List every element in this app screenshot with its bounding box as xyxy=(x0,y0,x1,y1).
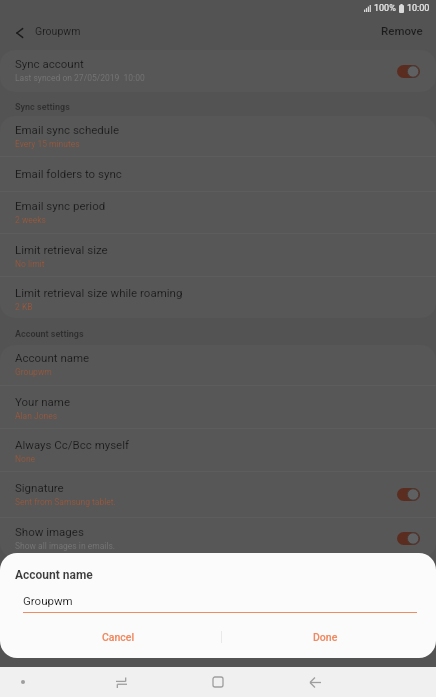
staticText: Alan Jones xyxy=(15,411,58,421)
staticText: Show all images in emails. xyxy=(15,541,116,551)
staticText: Signature xyxy=(15,481,64,494)
staticText: 100% xyxy=(374,3,396,14)
staticText: Limit retrieval size while roaming xyxy=(15,286,183,299)
button[interactable]: Email sync schedule xyxy=(0,116,436,156)
button[interactable]: Remove xyxy=(368,16,436,45)
staticText: Email folders to sync xyxy=(15,167,122,180)
staticText: Last synced on 27/05/2019 10:00 xyxy=(15,73,145,83)
staticText: Done xyxy=(313,631,338,643)
button[interactable]: Sync account xyxy=(0,50,436,92)
staticText: Limit retrieval size xyxy=(15,243,108,256)
button[interactable]: Email sync period xyxy=(0,192,436,233)
staticText: Cancel xyxy=(102,631,135,643)
button[interactable]: Home xyxy=(203,667,233,697)
staticText: No limit xyxy=(15,259,45,269)
button[interactable]: Your name xyxy=(0,386,436,428)
button[interactable]: Email folders to sync xyxy=(0,157,436,191)
staticText: Groupwm xyxy=(23,594,73,607)
staticText: 2 KB xyxy=(15,302,33,312)
staticText: None xyxy=(15,454,36,464)
button[interactable]: Limit retrieval size xyxy=(0,234,436,276)
button[interactable]: Toggle xyxy=(397,65,420,78)
button[interactable]: Limit retrieval size while roaming xyxy=(0,277,436,318)
staticText: Your name xyxy=(15,395,70,408)
button[interactable]: Recent apps xyxy=(106,667,136,697)
button[interactable]: Account name xyxy=(0,345,436,385)
button[interactable]: Show images xyxy=(0,518,436,558)
button[interactable]: Hide keyboard xyxy=(8,667,38,697)
staticText: 2 weeks xyxy=(15,215,46,225)
staticText: Always Cc/Bcc myself xyxy=(15,438,130,451)
button[interactable]: Navigate up xyxy=(6,19,33,46)
staticText: Account name xyxy=(15,351,90,364)
staticText: Show images xyxy=(15,525,84,538)
staticText: Sync account xyxy=(15,57,84,70)
staticText: Account name xyxy=(15,568,93,582)
staticText: Account settings xyxy=(15,329,84,340)
staticText: Groupwm xyxy=(15,367,52,377)
button[interactable]: Back xyxy=(300,667,330,697)
staticText: Sent from Samsung tablet. xyxy=(15,497,116,507)
staticText: Remove xyxy=(381,24,423,37)
staticText: Sync settings xyxy=(15,102,70,113)
staticText: 10:00 xyxy=(407,3,430,14)
button[interactable]: Signature xyxy=(0,472,436,517)
button[interactable]: Toggle xyxy=(397,488,420,501)
button[interactable]: Cancel xyxy=(16,623,221,650)
staticText: Every 15 minutes xyxy=(15,139,80,149)
staticText: Groupwm xyxy=(35,25,81,37)
button[interactable]: Always Cc/Bcc myself xyxy=(0,429,436,471)
staticText: Email sync schedule xyxy=(15,123,120,136)
staticText: Email sync period xyxy=(15,199,106,212)
button[interactable]: Done xyxy=(222,623,428,650)
button[interactable]: Toggle xyxy=(397,532,420,545)
